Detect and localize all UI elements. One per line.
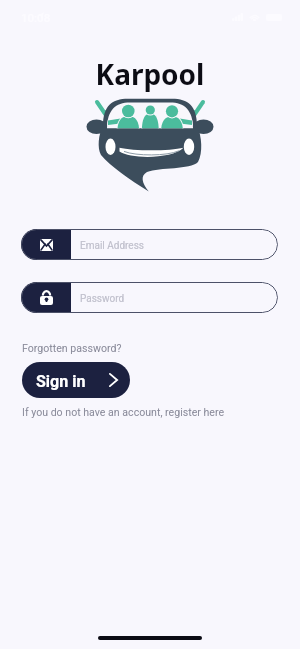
staticText: Forgotten password? — [22, 342, 122, 354]
other: Sign in — [109, 373, 118, 387]
staticText: Password — [80, 293, 125, 305]
button[interactable]: Sign in — [22, 362, 130, 398]
staticText: Email Address — [80, 240, 144, 252]
other: Email — [40, 239, 53, 251]
staticText: If you do not have an account, register … — [22, 406, 225, 418]
other: Password — [40, 290, 53, 305]
button[interactable]: Email — [21, 229, 278, 260]
button[interactable]: Forgotten password? — [22, 342, 122, 354]
button[interactable]: If you do not have an account, register … — [22, 406, 225, 418]
staticText: Sign in — [36, 372, 86, 391]
button[interactable]: Password — [21, 282, 278, 313]
staticText: Karpool — [0, 55, 300, 93]
other: Karpool logo — [84, 96, 216, 194]
